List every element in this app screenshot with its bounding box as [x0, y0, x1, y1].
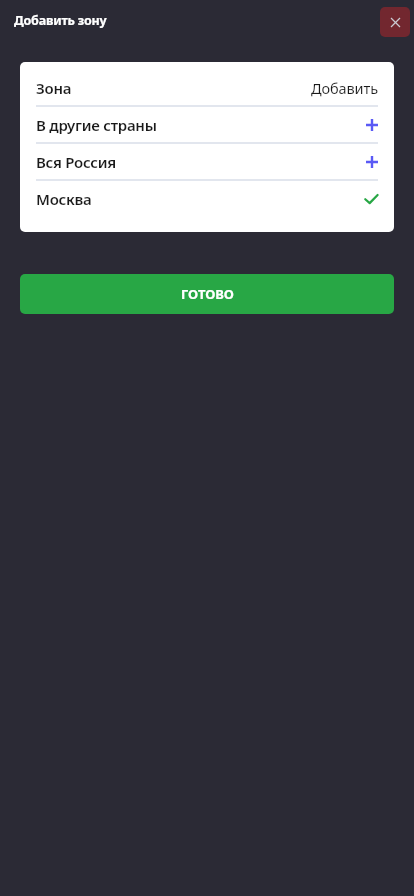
staticText: Добавить [311, 78, 378, 98]
other: Selected [365, 194, 378, 205]
button[interactable]: Зона [20, 70, 394, 107]
staticText: Добавить зону [14, 12, 107, 29]
staticText: ГОТОВО [181, 285, 234, 303]
other: Add zone [366, 156, 378, 168]
button[interactable]: Москва [20, 181, 394, 218]
button[interactable]: Close [380, 7, 410, 37]
staticText: В другие страны [36, 115, 157, 135]
button[interactable]: Вся Россия [20, 144, 394, 181]
staticText: Зона [36, 78, 72, 98]
button[interactable]: В другие страны [20, 107, 394, 144]
staticText: Вся Россия [36, 152, 116, 172]
staticText: Москва [36, 189, 92, 209]
other: Add zone [366, 119, 378, 131]
button[interactable]: ГОТОВО [20, 274, 394, 314]
